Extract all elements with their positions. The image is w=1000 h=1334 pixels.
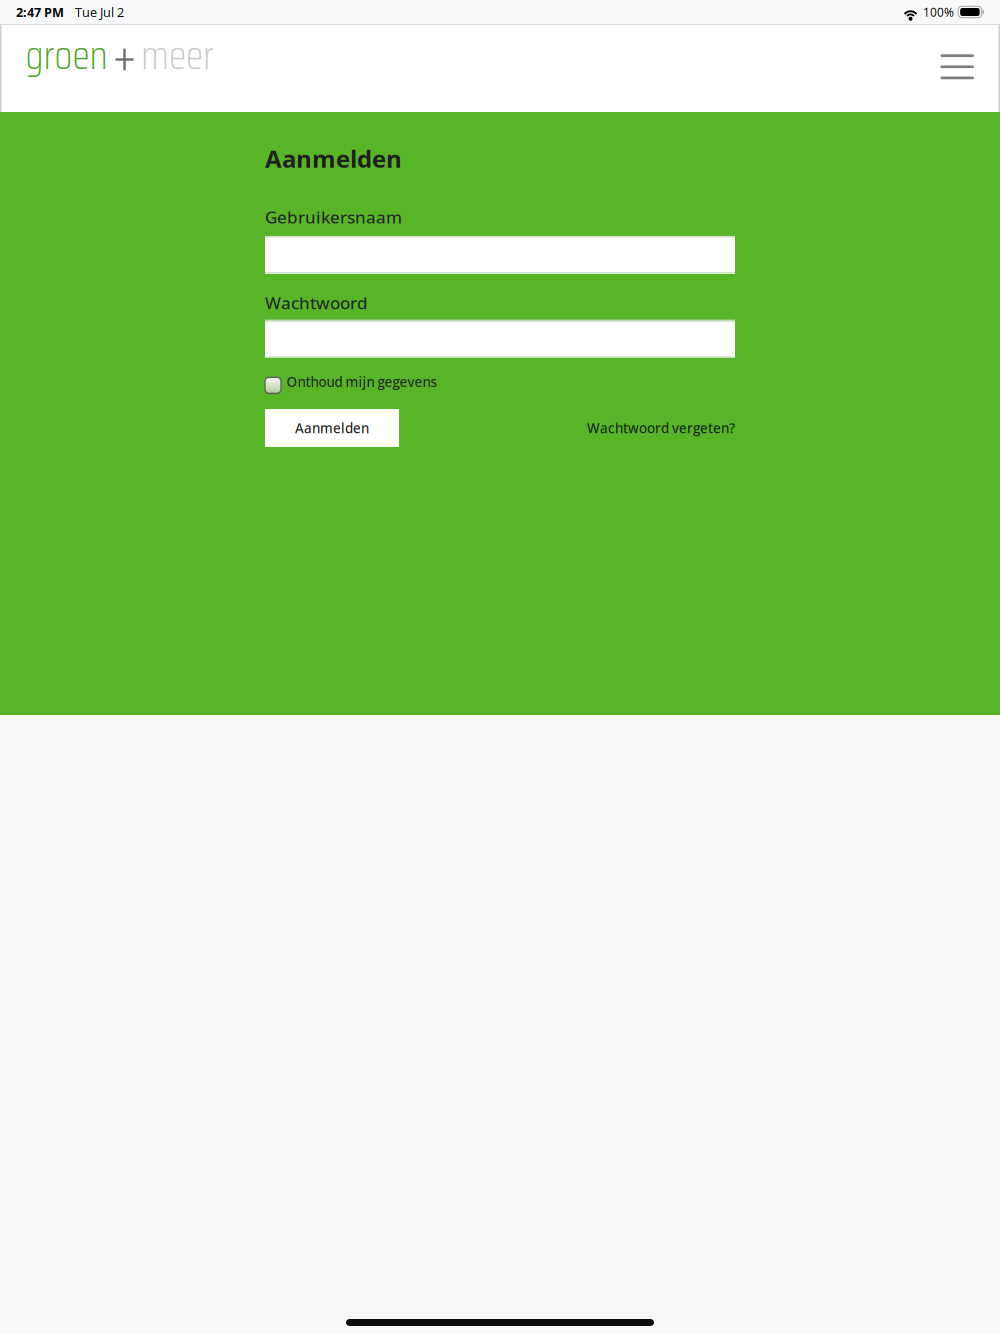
staticText: Aanmelden	[265, 142, 402, 175]
staticText: Aanmelden	[295, 419, 369, 437]
staticText: Wachtwoord vergeten?	[587, 419, 735, 437]
button[interactable]: Wachtwoord	[265, 320, 735, 358]
button[interactable]: Wachtwoord vergeten?	[587, 419, 735, 437]
staticText: Wachtwoord	[265, 291, 368, 314]
button[interactable]: Onthoud mijn gegevens	[265, 373, 436, 391]
staticText: 100%	[923, 4, 954, 20]
button[interactable]: Aanmelden	[265, 409, 399, 447]
staticText: 2:47 PM	[16, 3, 64, 21]
button[interactable]: Menu	[926, 41, 988, 94]
staticText: meer	[141, 23, 214, 86]
staticText: Gebruikersnaam	[265, 205, 402, 228]
staticText: Onthoud mijn gegevens	[286, 373, 436, 391]
staticText: Tue Jul 2	[75, 3, 124, 21]
staticText: groen	[25, 23, 107, 86]
button[interactable]: Gebruikersnaam	[265, 236, 735, 274]
